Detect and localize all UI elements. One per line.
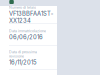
staticText: VF13BBFAA1STXX1234: [9, 10, 53, 24]
staticText: Data di prossima revisione: [9, 50, 37, 58]
staticText: Data immatricolazione: [9, 29, 46, 33]
staticText: 16/11/2015: [9, 59, 37, 66]
staticText: 06/06/2016: [9, 33, 43, 41]
staticText: Numero di telaio: [9, 5, 36, 10]
